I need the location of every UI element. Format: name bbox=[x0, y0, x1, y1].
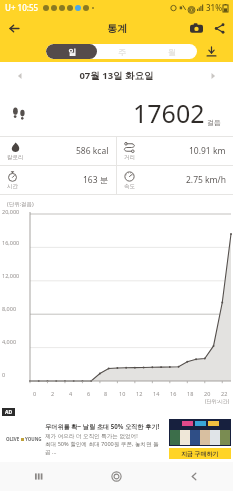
staticText: 16,000 bbox=[2, 239, 20, 246]
staticText: (단위:시간) bbox=[205, 398, 230, 405]
staticText: 0 bbox=[33, 390, 37, 397]
staticText: 4,000 bbox=[2, 338, 17, 345]
staticText: 14 bbox=[153, 390, 160, 397]
staticText: 칼로리 bbox=[7, 154, 24, 161]
staticText: 통계 bbox=[107, 22, 127, 35]
staticText: 시간 bbox=[7, 183, 18, 190]
staticText: 8,000 bbox=[2, 305, 17, 312]
button[interactable]: Previous day bbox=[10, 66, 30, 86]
button[interactable]: 지금 구매하기 bbox=[169, 448, 231, 459]
staticText: 16 bbox=[170, 390, 177, 397]
staticText: 월 bbox=[168, 47, 176, 57]
staticText: 20 bbox=[204, 390, 211, 397]
button[interactable]: Share bbox=[209, 18, 229, 38]
staticText: 07월 13일 화요일 bbox=[30, 69, 203, 82]
staticText: (단위:걸음) bbox=[7, 200, 34, 208]
staticText: 걸음 bbox=[207, 118, 221, 127]
staticText: OLIVE bbox=[6, 436, 20, 442]
button[interactable]: Recents bbox=[0, 462, 77, 491]
staticText: 10.91 km bbox=[189, 145, 226, 157]
staticText: 163 분 bbox=[83, 174, 109, 186]
staticText: U+ 10:55 bbox=[5, 2, 39, 13]
staticText: YOUNG bbox=[25, 436, 42, 442]
staticText: 6 bbox=[87, 390, 91, 397]
button[interactable]: 일 bbox=[46, 44, 97, 59]
button[interactable]: Home bbox=[77, 462, 155, 491]
staticText: 586 kcal bbox=[76, 145, 109, 157]
button[interactable]: Back bbox=[155, 462, 233, 491]
staticText: 지금 구매하기 bbox=[181, 450, 219, 458]
button[interactable]: Back bbox=[4, 18, 24, 38]
staticText: 4 bbox=[69, 390, 73, 397]
button[interactable]: Capture bbox=[186, 18, 206, 38]
staticText: 일 bbox=[68, 47, 76, 57]
staticText: 12,000 bbox=[2, 272, 20, 279]
staticText: 31% bbox=[206, 2, 222, 13]
button[interactable]: 속도 bbox=[117, 166, 233, 194]
staticText: 2 bbox=[51, 390, 55, 397]
staticText: AD bbox=[5, 409, 13, 416]
staticText: 0 bbox=[2, 371, 6, 378]
staticText: 속도 bbox=[124, 183, 135, 190]
staticText: 거리 bbox=[124, 154, 135, 161]
button[interactable]: AD bbox=[0, 407, 233, 462]
button[interactable]: 시간 bbox=[0, 166, 116, 194]
staticText: 제가 여으라 더 오직인 특가는 없었어! bbox=[45, 432, 138, 440]
button[interactable]: Next day bbox=[203, 66, 223, 86]
staticText: 12 bbox=[136, 390, 143, 397]
staticText: 주 bbox=[118, 47, 126, 57]
staticText: 18 bbox=[187, 390, 194, 397]
staticText: 무더위를 확~ 날릴 초대 50% 오직한 후기! bbox=[45, 422, 160, 430]
staticText: 10 bbox=[119, 390, 126, 397]
button[interactable]: 주 bbox=[97, 44, 147, 59]
button[interactable]: 칼로리 bbox=[0, 137, 116, 165]
staticText: 17602 bbox=[133, 96, 205, 130]
staticText: 2.75 km/h bbox=[186, 174, 226, 186]
staticText: 20,000 bbox=[2, 208, 20, 215]
staticText: 8 bbox=[104, 390, 108, 397]
staticText: 22 bbox=[221, 390, 228, 397]
button[interactable]: Download bbox=[197, 41, 225, 62]
button[interactable]: 월 bbox=[147, 44, 197, 59]
staticText: 최대 50% 할인에 최대 7000원 쿠폰, 놓치면 돌곰 ... bbox=[45, 440, 167, 456]
button[interactable]: 거리 bbox=[117, 137, 233, 165]
